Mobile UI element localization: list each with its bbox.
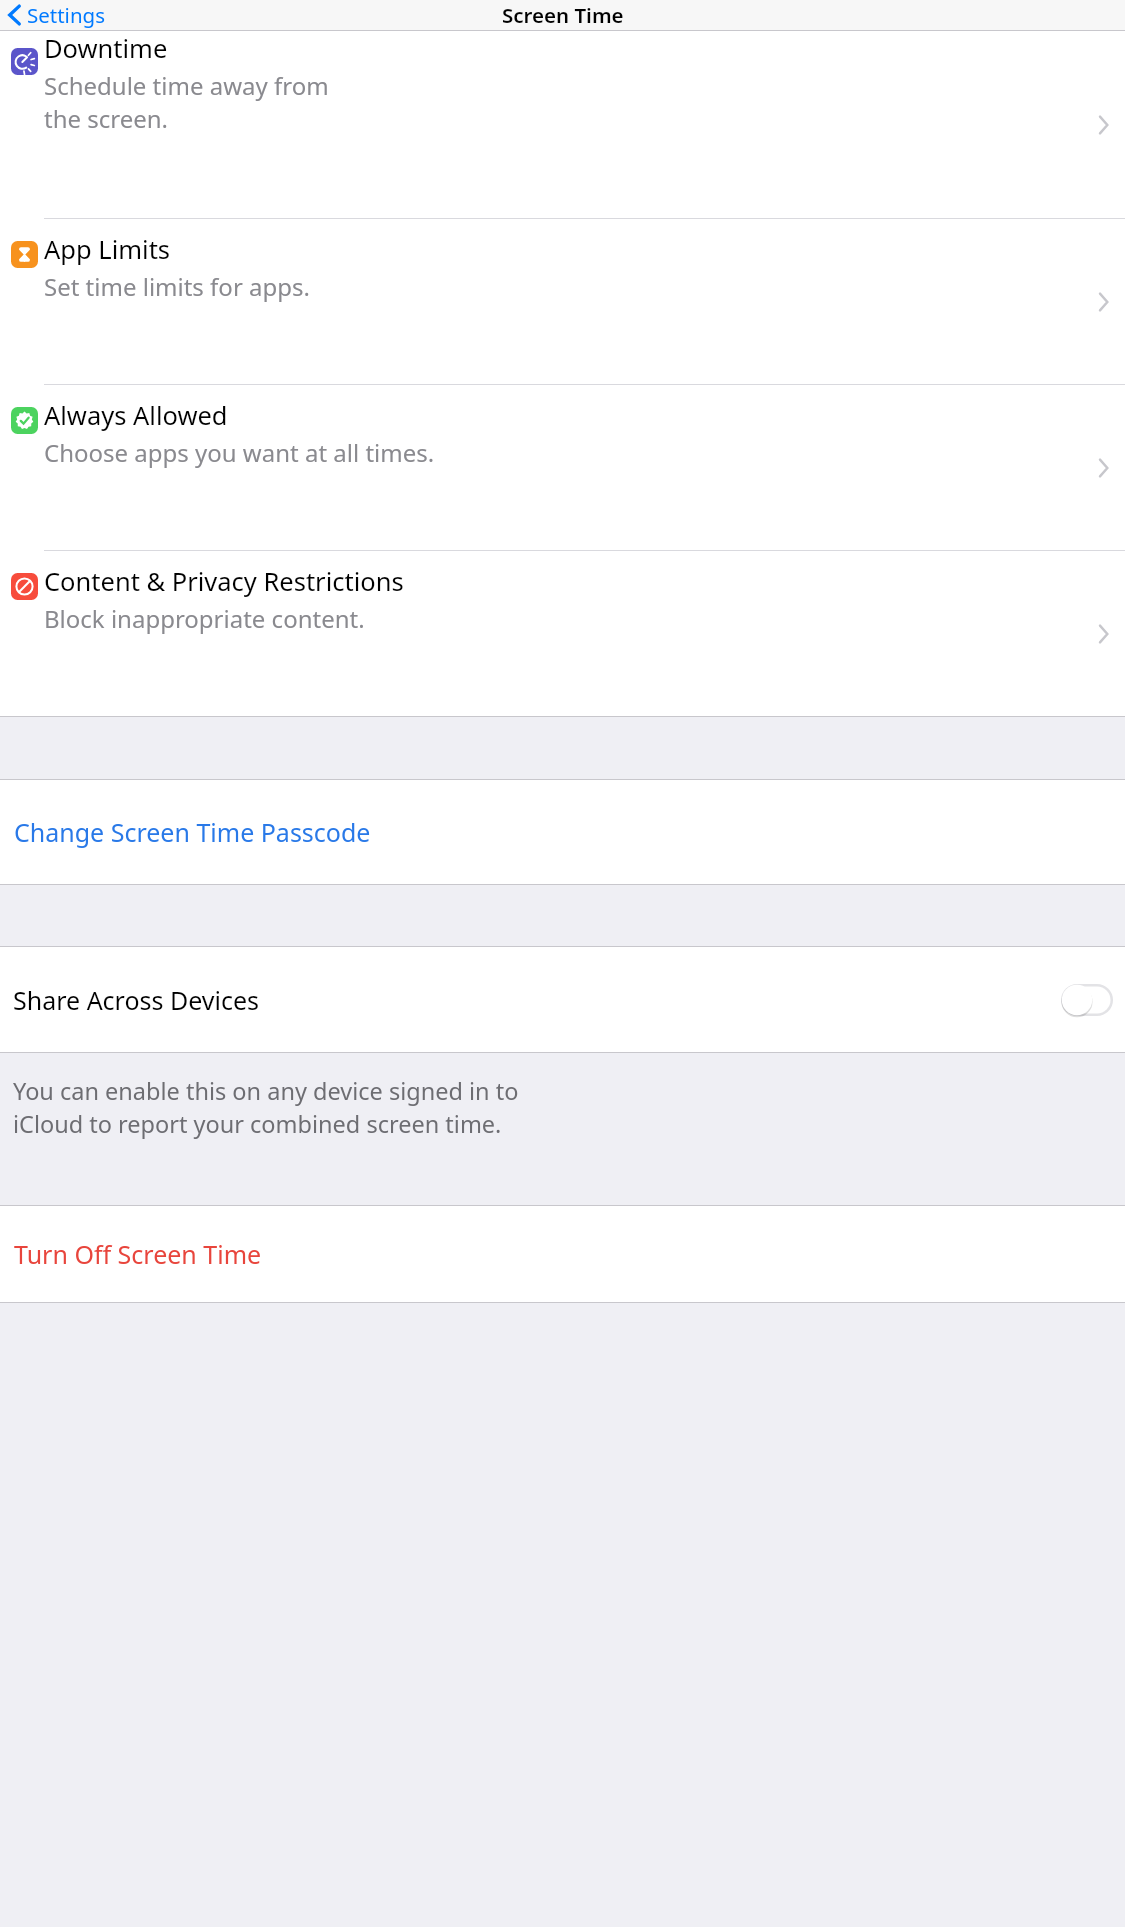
staticText: Choose apps you want at all times. [44,436,435,469]
button[interactable]: Settings [6,1,106,29]
button[interactable]: Share Across Devices toggle [1061,984,1113,1016]
staticText: Schedule time away from the screen. [44,69,329,135]
button[interactable]: App Limits [0,219,1125,384]
button[interactable]: Change Screen Time Passcode [0,780,1125,884]
staticText: Screen Time [502,1,624,29]
staticText: You can enable this on any device signed… [13,1075,519,1140]
button[interactable]: Turn Off Screen Time [0,1206,1125,1302]
staticText: Change Screen Time Passcode [14,815,371,849]
staticText: Downtime [44,31,168,66]
staticText: Content & Privacy Restrictions [44,564,404,599]
button[interactable]: Downtime [0,31,1125,218]
staticText: Settings [27,1,106,29]
staticText: App Limits [44,232,171,267]
button[interactable]: Always Allowed [0,385,1125,550]
staticText: Block inappropriate content. [44,602,365,635]
staticText: Set time limits for apps. [44,270,310,303]
staticText: Share Across Devices [13,983,260,1017]
button[interactable]: Content & Privacy Restrictions [0,551,1125,716]
staticText: Always Allowed [44,398,228,433]
button[interactable]: Share Across Devices [0,947,1125,1052]
staticText: Turn Off Screen Time [14,1237,262,1271]
